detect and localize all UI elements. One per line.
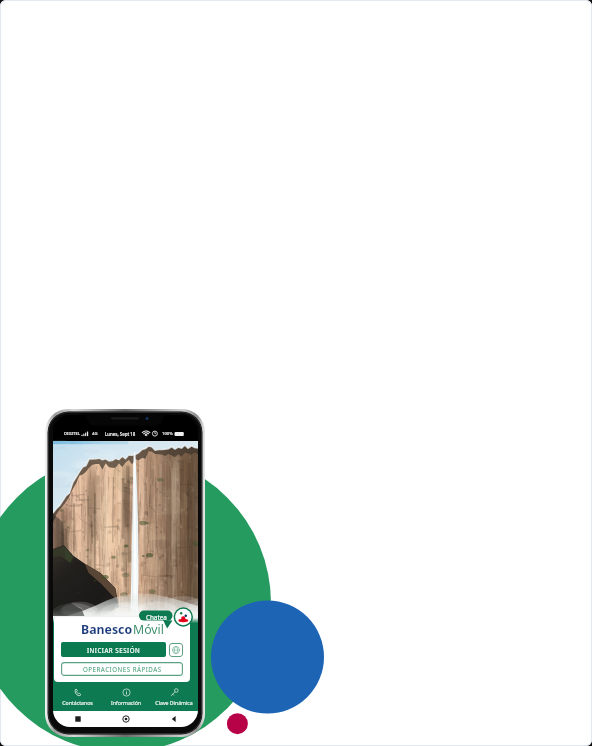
button[interactable]: Back [150, 711, 198, 727]
staticText: Banesco [81, 621, 133, 638]
staticText: INICIAR SESIÓN [87, 646, 141, 654]
button[interactable]: OPERACIONES RÁPIDAS [61, 662, 183, 676]
button[interactable]: Idioma [169, 643, 183, 657]
button[interactable]: Contáctanos [53, 682, 102, 711]
button[interactable]: INICIAR SESIÓN [61, 642, 166, 657]
staticText: Lunes, Sept 18 [105, 431, 136, 437]
staticText: Clave Dinámica [155, 699, 193, 706]
staticText: DIGITEL [64, 431, 80, 437]
staticText: Chatea [146, 613, 167, 622]
button[interactable]: Chatea [139, 609, 193, 629]
staticText: 4G [92, 431, 98, 437]
button[interactable]: Clave Dinámica [150, 682, 198, 711]
button[interactable]: Home [102, 711, 150, 727]
staticText: Móvil [133, 621, 164, 638]
staticText: Contáctanos [62, 699, 93, 706]
button[interactable]: Recents [53, 711, 102, 727]
staticText: OPERACIONES RÁPIDAS [83, 665, 162, 673]
button[interactable]: Información [102, 682, 150, 711]
staticText: 100% [162, 431, 173, 437]
staticText: Información [111, 699, 141, 706]
